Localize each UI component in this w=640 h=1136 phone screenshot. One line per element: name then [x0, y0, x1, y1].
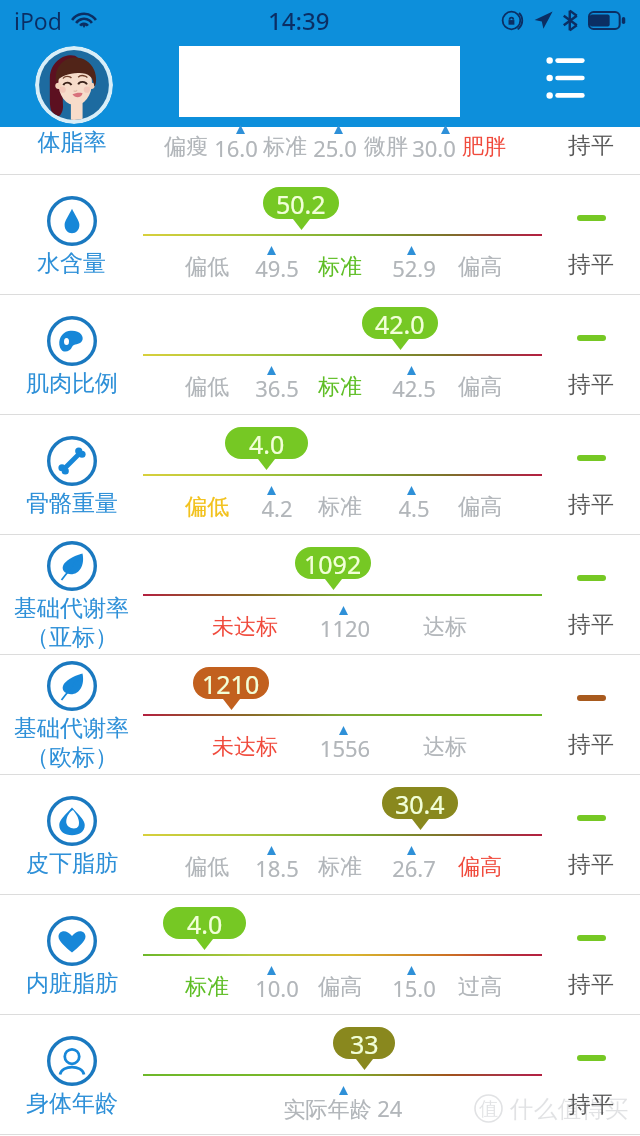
staticText: 50.2: [276, 187, 326, 219]
staticText: 标准: [215, 133, 355, 161]
staticText: 偏高: [410, 853, 550, 881]
staticText: 25.0: [265, 133, 405, 163]
staticText: 偏低: [137, 373, 277, 401]
staticText: 过高: [410, 973, 550, 1001]
button[interactable]: 皮下脂肪: [0, 775, 640, 894]
staticText: 15.0: [344, 973, 484, 1003]
staticText: 偏低: [137, 253, 277, 281]
staticText: 52.9: [344, 253, 484, 283]
staticText: 偏高: [410, 493, 550, 521]
staticText: 1120: [275, 613, 415, 643]
staticText: 偏低: [137, 493, 277, 521]
staticText: 达标: [375, 613, 515, 641]
staticText: 1210: [202, 667, 260, 699]
staticText: 42.0: [375, 307, 425, 339]
staticText: 基础代谢率: [14, 714, 129, 743]
staticText: 持平: [545, 1090, 637, 1119]
staticText: 42.5: [344, 373, 484, 403]
button[interactable]: 身体年龄: [0, 1015, 640, 1134]
staticText: 肥胖: [414, 133, 554, 161]
staticText: 持平: [545, 970, 637, 999]
button[interactable]: Menu: [532, 52, 594, 104]
staticText: 持平: [545, 490, 637, 519]
staticText: 偏高: [410, 373, 550, 401]
staticText: 骨骼重量: [26, 489, 118, 518]
staticText: 内脏脂肪: [26, 969, 118, 998]
staticText: 30.0: [364, 133, 504, 163]
button[interactable]: 骨骼重量: [0, 415, 640, 534]
staticText: iPod: [14, 5, 62, 36]
button[interactable]: 体脂率: [0, 127, 640, 174]
staticText: 微胖: [316, 133, 456, 161]
staticText: 1556: [275, 733, 415, 763]
staticText: 水含量: [37, 249, 106, 278]
staticText: 4.2: [207, 493, 347, 523]
staticText: 持平: [545, 850, 637, 879]
staticText: 16.0: [166, 133, 306, 163]
button[interactable]: 基础代谢率: [0, 535, 640, 654]
staticText: 标准: [270, 253, 410, 281]
staticText: 体脂率: [0, 128, 144, 157]
staticText: （亚标）: [26, 623, 118, 652]
staticText: 未达标: [175, 613, 315, 641]
staticText: 持平: [545, 730, 637, 759]
staticText: 49.5: [207, 253, 347, 283]
staticText: 持平: [545, 250, 637, 279]
staticText: 4.0: [187, 907, 223, 939]
staticText: 33: [350, 1027, 379, 1059]
staticText: 肌肉比例: [26, 369, 118, 398]
button[interactable]: 内脏脂肪: [0, 895, 640, 1014]
staticText: 30.4: [395, 787, 445, 819]
staticText: 持平: [545, 131, 637, 160]
staticText: 标准: [270, 853, 410, 881]
button[interactable]: Profile: [35, 46, 113, 124]
staticText: 4.5: [344, 493, 484, 523]
staticText: 偏高: [270, 973, 410, 1001]
button[interactable]: 肌肉比例: [0, 295, 640, 414]
staticText: 值: [479, 1097, 498, 1121]
staticText: 偏低: [137, 853, 277, 881]
staticText: 偏瘦: [116, 133, 256, 161]
staticText: 持平: [545, 610, 637, 639]
staticText: 皮下脂肪: [26, 849, 118, 878]
staticText: 未达标: [175, 733, 315, 761]
staticText: 标准: [137, 973, 277, 1001]
staticText: （欧标）: [26, 743, 118, 772]
button[interactable]: 水含量: [0, 175, 640, 294]
staticText: 基础代谢率: [14, 594, 129, 623]
staticText: 4.0: [249, 427, 285, 459]
staticText: 实际年龄 24: [273, 1093, 413, 1123]
staticText: 36.5: [207, 373, 347, 403]
staticText: 标准: [270, 373, 410, 401]
staticText: 身体年龄: [26, 1089, 118, 1118]
staticText: 1092: [304, 547, 362, 579]
staticText: 偏高: [410, 253, 550, 281]
staticText: 达标: [375, 733, 515, 761]
button[interactable]: 基础代谢率: [0, 655, 640, 774]
staticText: 持平: [545, 370, 637, 399]
staticText: 14:39: [268, 4, 330, 37]
staticText: 18.5: [207, 853, 347, 883]
staticText: 10.0: [207, 973, 347, 1003]
staticText: 什么值得买: [510, 1094, 629, 1124]
staticText: 26.7: [344, 853, 484, 883]
staticText: 标准: [270, 493, 410, 521]
